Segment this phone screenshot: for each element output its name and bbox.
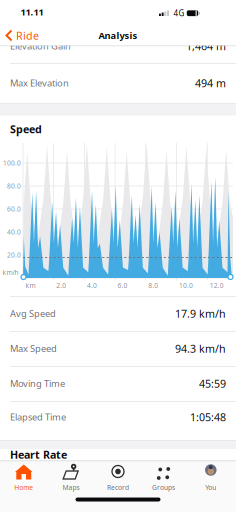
- staticText: km: [25, 281, 35, 290]
- staticText: Speed: [10, 122, 42, 136]
- staticText: Record: [107, 483, 129, 492]
- button[interactable]: You: [187, 462, 235, 492]
- staticText: Ride: [16, 28, 39, 43]
- button[interactable]: Ride: [5, 25, 55, 45]
- staticText: Home: [14, 483, 33, 492]
- staticText: 60.0: [7, 205, 21, 213]
- staticText: Analysis: [98, 29, 137, 42]
- staticText: Max Elevation: [10, 77, 69, 89]
- staticText: Elevation Gain: [10, 40, 71, 52]
- button[interactable]: Home: [0, 462, 47, 492]
- staticText: You: [205, 483, 216, 492]
- staticText: Heart Rate: [10, 447, 67, 462]
- staticText: 4.0: [87, 281, 97, 290]
- staticText: km/h: [2, 268, 18, 277]
- staticText: Max Speed: [10, 342, 57, 355]
- staticText: 20.0: [7, 251, 21, 259]
- staticText: Groups: [152, 483, 175, 492]
- button[interactable]: Record: [94, 462, 142, 492]
- staticText: Avg Speed: [10, 307, 56, 320]
- staticText: 45:59: [199, 376, 226, 391]
- staticText: 494 m: [195, 76, 226, 90]
- staticText: Maps: [62, 483, 79, 492]
- staticText: 40.0: [7, 228, 21, 236]
- staticText: 80.0: [7, 182, 21, 190]
- staticText: 1,464 m: [186, 39, 226, 53]
- staticText: 6.0: [118, 281, 128, 290]
- staticText: 10.0: [179, 281, 193, 290]
- staticText: 17.9 km/h: [175, 306, 226, 321]
- staticText: 11.11: [20, 6, 43, 18]
- button[interactable]: Groups: [140, 462, 187, 492]
- staticText: 2.0: [56, 281, 66, 290]
- staticText: Moving Time: [10, 377, 65, 390]
- staticText: 12.0: [210, 281, 224, 290]
- button[interactable]: Maps: [47, 462, 95, 492]
- staticText: 100.0: [3, 159, 21, 167]
- staticText: 1:05:48: [190, 410, 226, 424]
- staticText: 8.0: [148, 281, 158, 290]
- staticText: 4G: [173, 8, 184, 18]
- staticText: Elapsed Time: [10, 411, 66, 423]
- staticText: 94.3 km/h: [175, 341, 226, 356]
